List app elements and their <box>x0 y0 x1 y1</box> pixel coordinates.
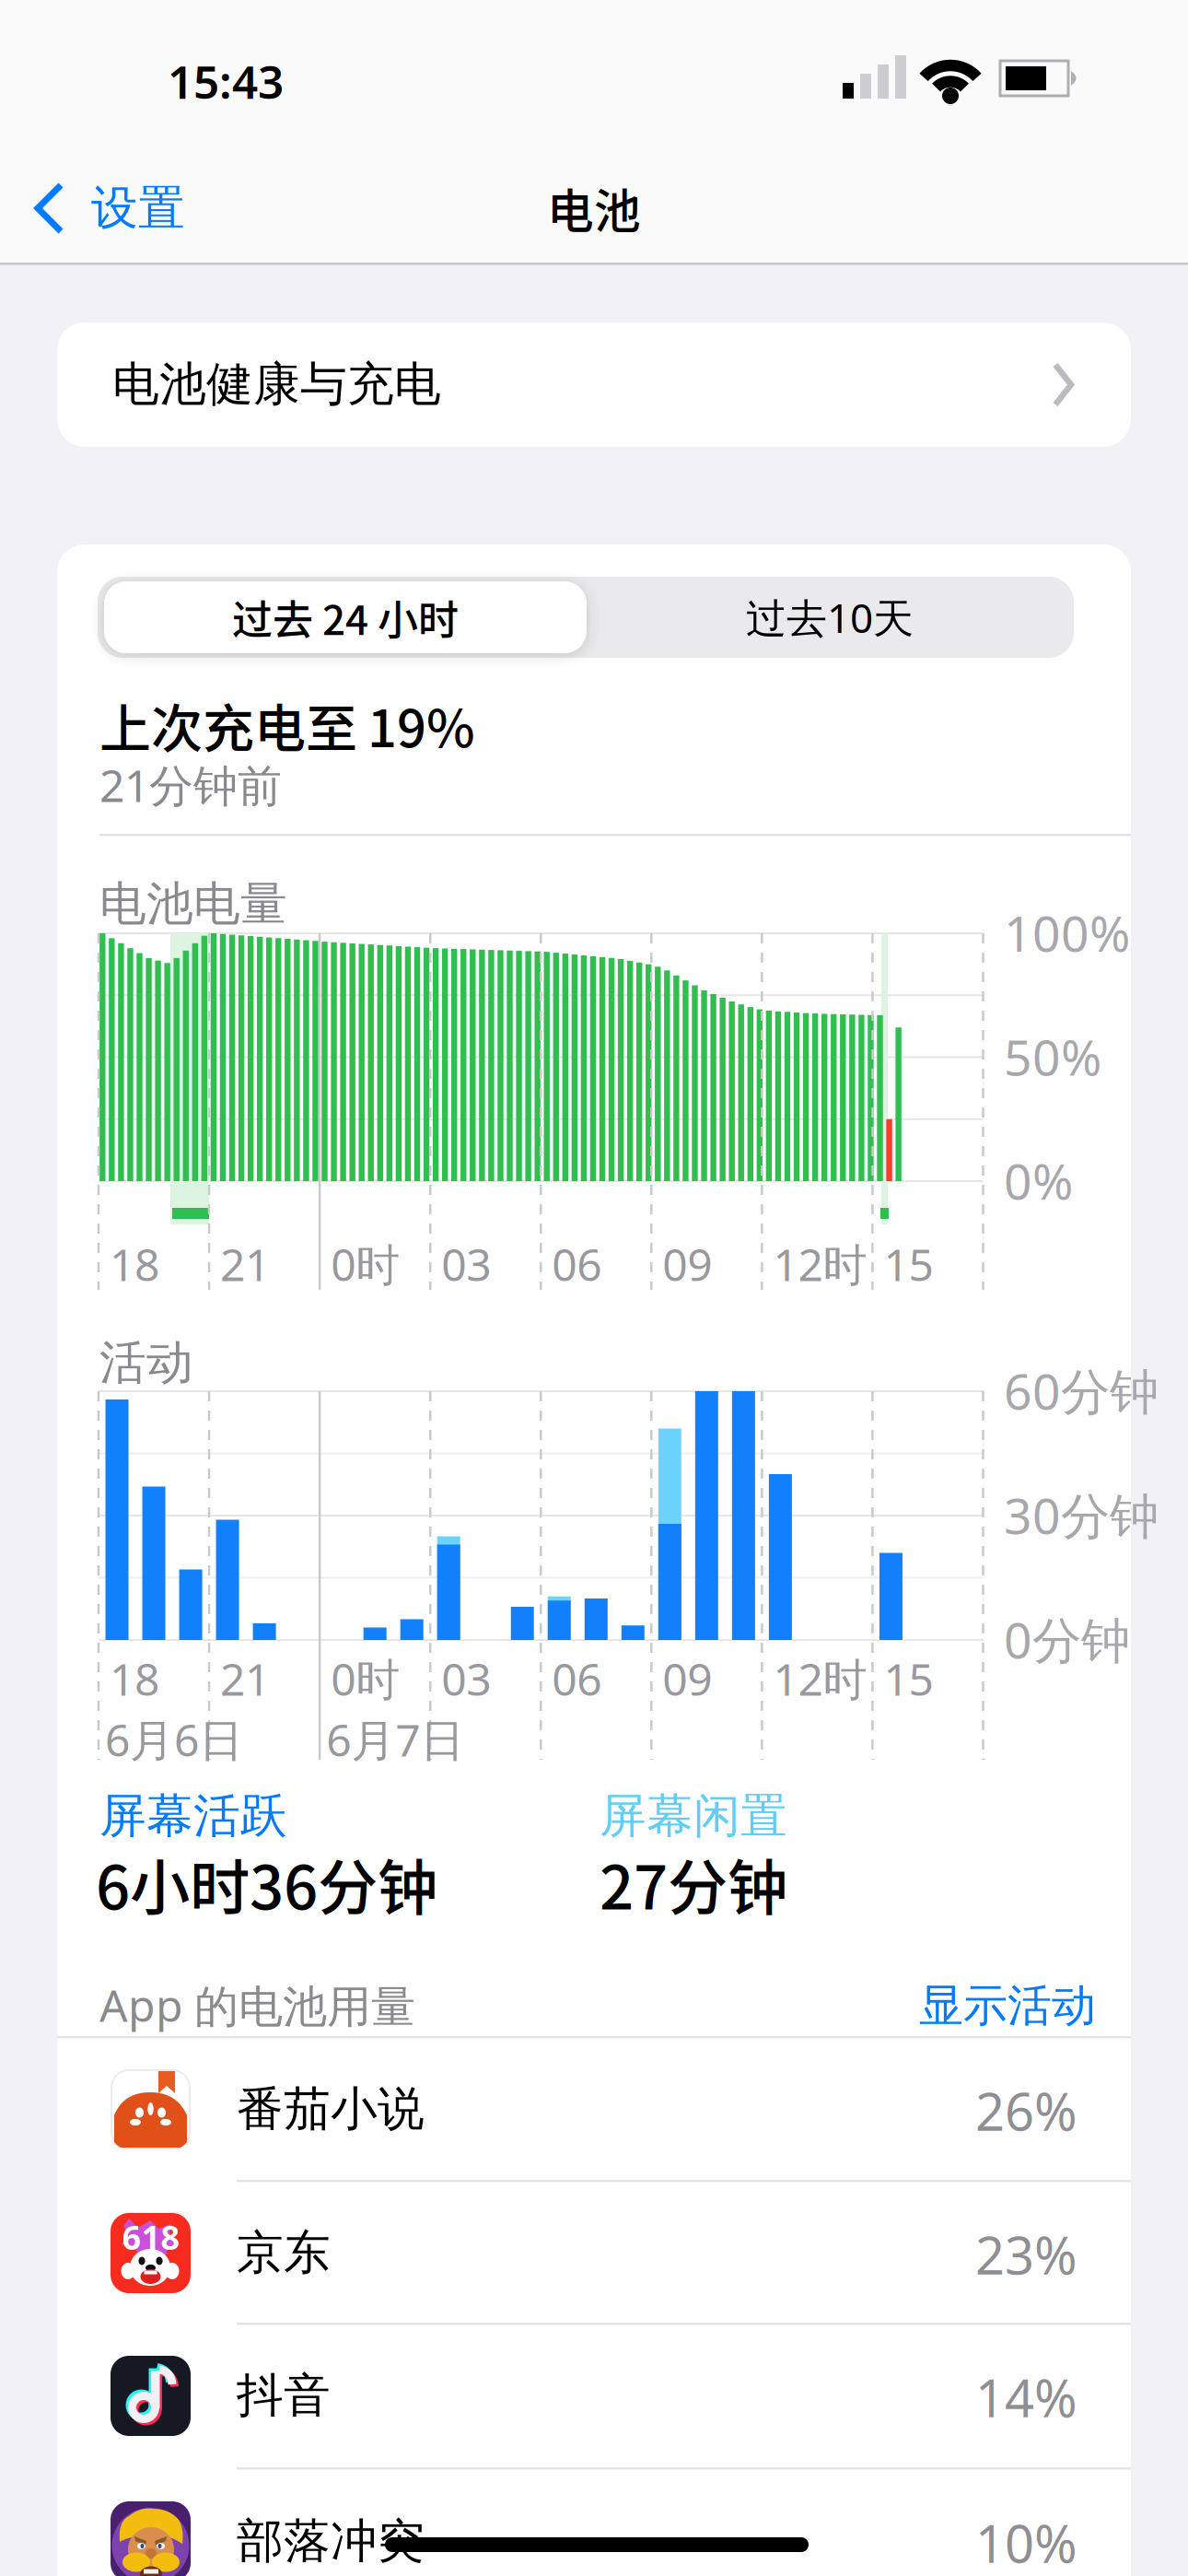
staticText: 06 <box>552 1235 602 1293</box>
button[interactable]: 部落冲突 <box>57 2470 1131 2576</box>
staticText: 09 <box>662 1649 712 1708</box>
staticText: 6月6日 <box>105 1710 243 1769</box>
staticText: 26% <box>975 2076 1077 2145</box>
staticText: 6小时36分钟 <box>96 1841 437 1926</box>
button[interactable]: 过去 24 小时 <box>101 577 589 658</box>
button[interactable]: 返回设置 <box>0 0 258 111</box>
staticText: 30分钟 <box>1004 1482 1159 1548</box>
button[interactable]: 显示活动 <box>820 1975 1096 2036</box>
staticText: 21分钟前 <box>99 755 282 814</box>
staticText: 15 <box>884 1235 933 1293</box>
staticText: 12时 <box>773 1649 867 1708</box>
staticText: 60分钟 <box>1004 1358 1159 1423</box>
staticText: 09 <box>662 1235 712 1293</box>
staticText: 12时 <box>773 1235 867 1293</box>
staticText: 21 <box>220 1649 270 1708</box>
staticText: 京东 <box>237 2224 331 2281</box>
staticText: 100% <box>1004 900 1130 965</box>
staticText: 03 <box>441 1235 491 1293</box>
staticText: 番茄小说 <box>237 2080 425 2138</box>
staticText: 50% <box>1004 1024 1101 1089</box>
staticText: 21 <box>220 1235 270 1293</box>
button[interactable]: 电池健康与充电 <box>57 322 1131 447</box>
staticText: 活动 <box>99 1334 193 1391</box>
staticText: 14% <box>975 2363 1077 2432</box>
staticText: 电池 <box>547 175 641 241</box>
staticText: 过去 24 小时 <box>232 589 459 646</box>
staticText: 0时 <box>331 1649 400 1708</box>
button[interactable]: 618 <box>57 2182 1131 2324</box>
staticText: 设置 <box>91 180 185 237</box>
staticText: 0时 <box>331 1235 400 1293</box>
staticText: 03 <box>441 1649 491 1708</box>
staticText: 06 <box>552 1649 602 1708</box>
staticText: 0分钟 <box>1004 1607 1130 1672</box>
staticText: 15:43 <box>168 51 284 111</box>
staticText: 屏幕活跃 <box>99 1787 287 1845</box>
button[interactable]: 过去10天 <box>586 577 1074 658</box>
staticText: 23% <box>975 2220 1077 2289</box>
staticText: 10% <box>975 2509 1077 2576</box>
staticText: 抖音 <box>237 2367 331 2424</box>
staticText: 18 <box>110 1235 159 1293</box>
button[interactable]: 番茄小说 <box>57 2038 1131 2181</box>
staticText: 15 <box>884 1649 933 1708</box>
staticText: 6月7日 <box>326 1710 464 1769</box>
button[interactable]: 抖音 <box>57 2324 1131 2467</box>
staticText: 部落冲突 <box>237 2512 425 2570</box>
staticText: 18 <box>110 1649 159 1708</box>
staticText: 电池健康与充电 <box>112 356 441 413</box>
staticText: 27分钟 <box>600 1841 787 1926</box>
staticText: 屏幕闲置 <box>600 1787 787 1845</box>
staticText: 618 <box>122 2215 180 2259</box>
staticText: 显示活动 <box>919 1979 1096 2033</box>
staticText: 上次充电至 19% <box>99 688 475 761</box>
staticText: 电池电量 <box>99 875 287 933</box>
staticText: 过去10天 <box>746 590 914 644</box>
staticText: App 的电池用量 <box>99 1975 415 2034</box>
staticText: 0% <box>1004 1148 1073 1213</box>
